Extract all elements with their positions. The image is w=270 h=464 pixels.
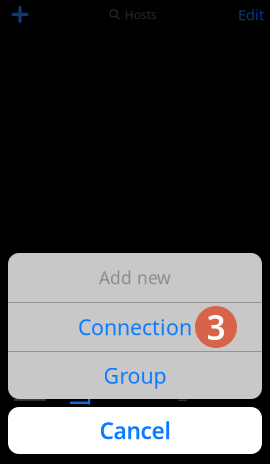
button[interactable]: Group — [8, 352, 262, 399]
button[interactable]: Edit — [232, 0, 270, 29]
staticText: Add new — [99, 266, 171, 289]
staticText: Hosts — [125, 6, 157, 22]
button[interactable]: Add — [0, 0, 40, 29]
button[interactable]: Cancel — [8, 407, 262, 454]
staticText: Group — [103, 361, 166, 390]
staticText: Cancel — [99, 415, 170, 445]
staticText: Edit — [238, 5, 264, 24]
button[interactable]: Connection — [8, 303, 262, 351]
staticText: Connection — [78, 313, 192, 341]
button[interactable]: Hosts — [109, 0, 157, 29]
staticText: 3 — [206, 305, 225, 349]
